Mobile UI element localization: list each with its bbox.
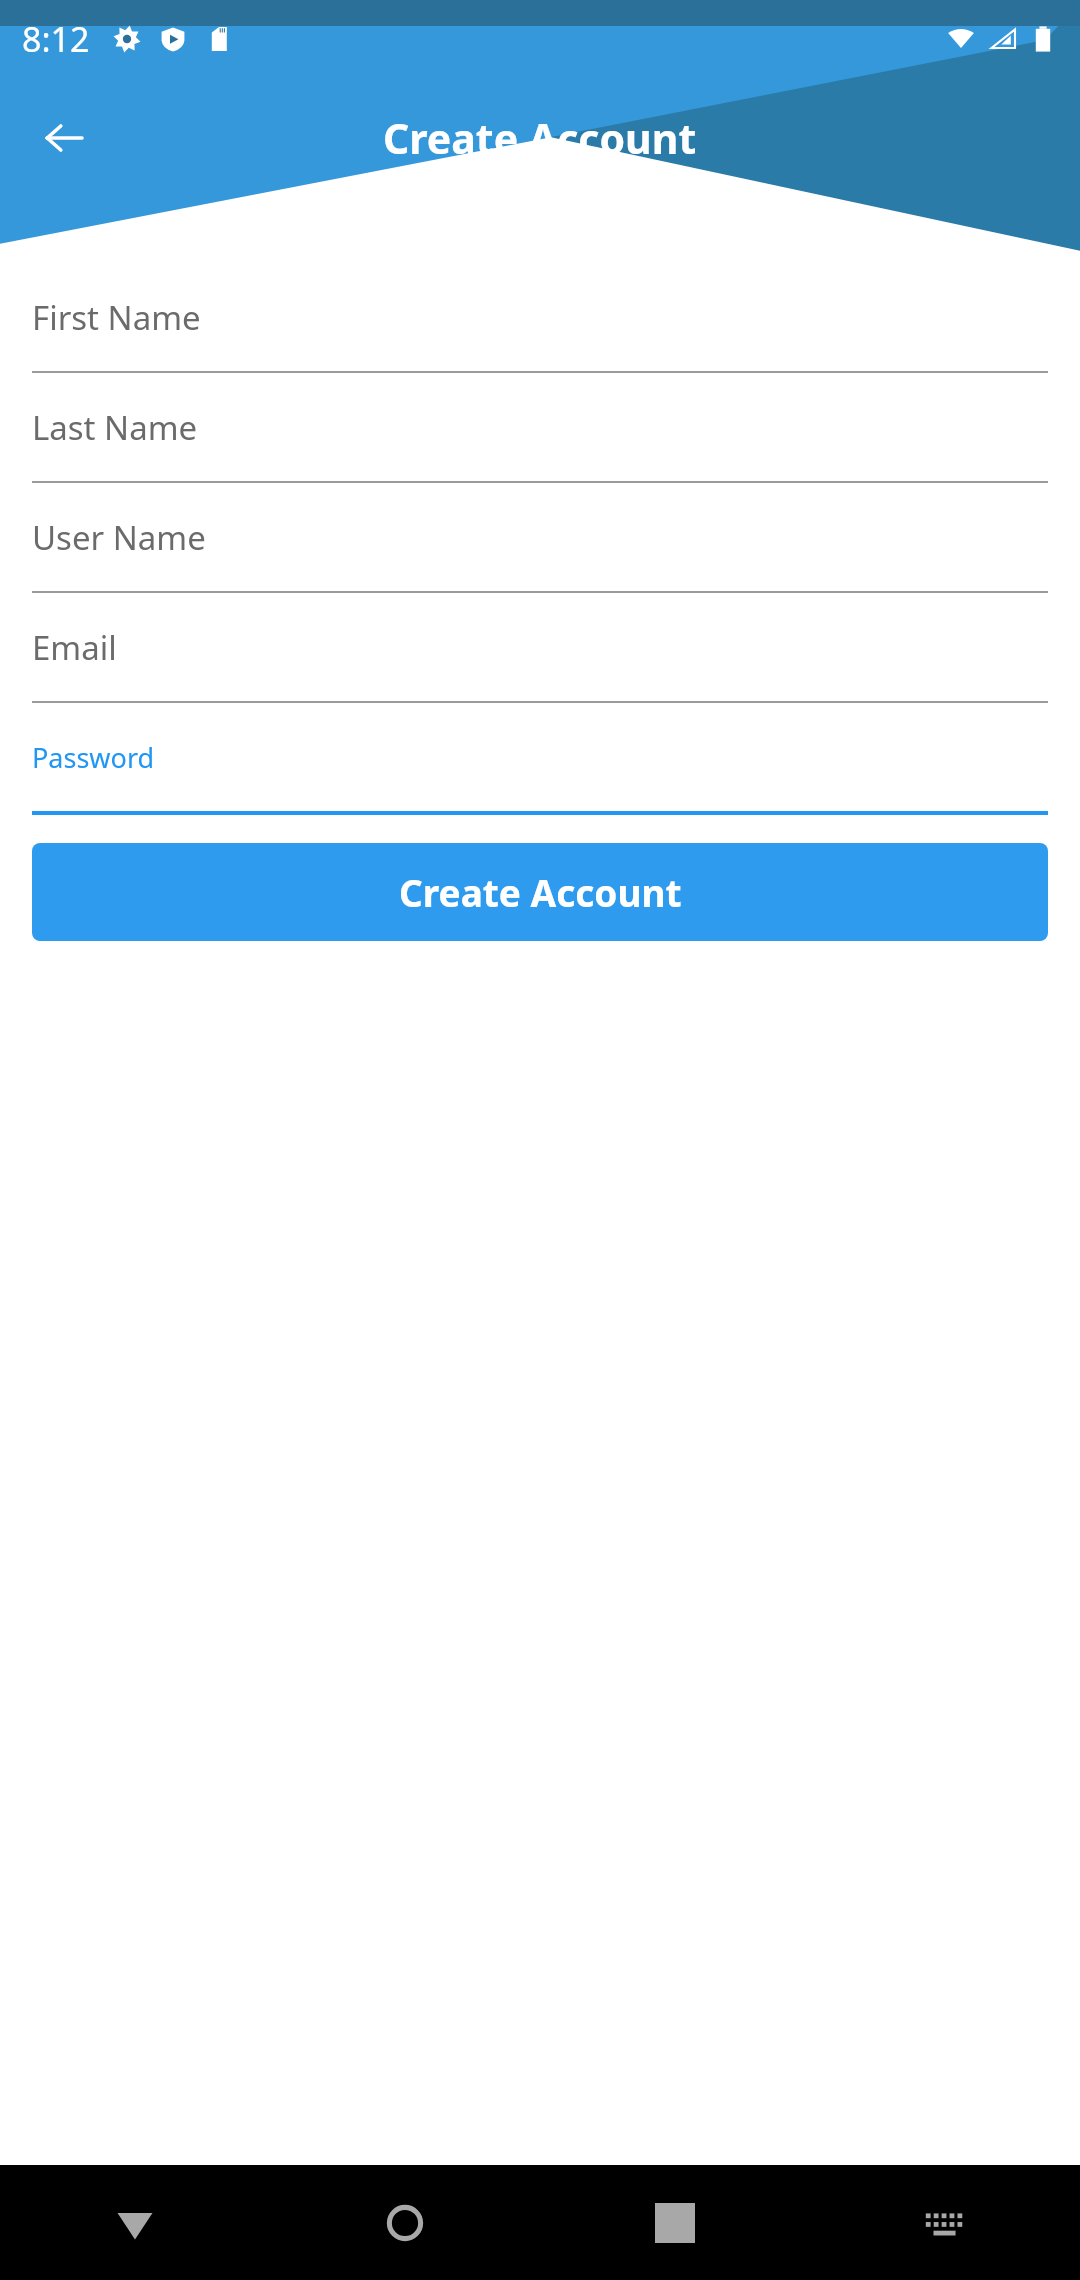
staticText: First Name [32,295,201,340]
button[interactable]: Email [0,593,1080,703]
button[interactable]: Password [0,703,1080,815]
button[interactable]: Back [0,2165,270,2280]
button[interactable]: First Name [0,263,1080,373]
button[interactable]: Last Name [0,373,1080,483]
button[interactable]: Keyboard [810,2165,1080,2280]
staticText: Password [32,739,155,776]
staticText: 8:12 [22,16,90,62]
button[interactable]: User Name [0,483,1080,593]
button[interactable]: Home [270,2165,540,2280]
staticText: Create Account [383,110,697,166]
staticText: Last Name [32,405,198,450]
staticText: Create Account [399,867,682,917]
button[interactable]: Recent apps [540,2165,810,2280]
staticText: Email [32,625,117,670]
button[interactable]: Back [28,102,100,174]
staticText: User Name [32,515,206,560]
button[interactable]: Create Account [32,843,1048,941]
